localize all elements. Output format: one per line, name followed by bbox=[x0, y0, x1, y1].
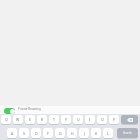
staticText: A bbox=[11, 131, 14, 136]
button[interactable]: J bbox=[79, 128, 89, 138]
button[interactable]: I bbox=[85, 115, 95, 124]
button[interactable]: O bbox=[97, 115, 107, 124]
staticText: I bbox=[89, 117, 91, 122]
staticText: P bbox=[113, 117, 116, 122]
button[interactable]: Y bbox=[61, 115, 71, 124]
button[interactable]: S bbox=[19, 128, 29, 138]
button[interactable]: L bbox=[103, 128, 113, 138]
staticText: K bbox=[95, 131, 98, 136]
button[interactable]: P bbox=[109, 115, 119, 124]
button[interactable]: H bbox=[67, 128, 77, 138]
button[interactable]: R bbox=[37, 115, 47, 124]
staticText: Q bbox=[5, 117, 8, 122]
button[interactable]: E bbox=[25, 115, 35, 124]
button[interactable]: G bbox=[55, 128, 65, 138]
button[interactable]: Search bbox=[117, 128, 138, 138]
button[interactable] bbox=[121, 115, 138, 124]
staticText: J bbox=[84, 131, 85, 136]
staticText: R bbox=[41, 117, 44, 122]
staticText: W bbox=[16, 117, 20, 122]
button[interactable]: W bbox=[13, 115, 23, 124]
button[interactable]: T bbox=[49, 115, 59, 124]
staticText: Search bbox=[123, 131, 132, 135]
staticText: D bbox=[35, 131, 38, 136]
staticText: E bbox=[29, 117, 31, 122]
button[interactable]: F bbox=[43, 128, 53, 138]
button[interactable]: U bbox=[73, 115, 83, 124]
staticText: G bbox=[59, 131, 62, 136]
staticText: L bbox=[107, 131, 109, 136]
button[interactable]: K bbox=[91, 128, 101, 138]
staticText: Private Browsing bbox=[18, 107, 41, 111]
staticText: H bbox=[71, 131, 74, 136]
staticText: Y bbox=[65, 117, 67, 122]
staticText: O bbox=[101, 117, 104, 122]
button[interactable]: Q bbox=[1, 115, 11, 124]
button[interactable]: D bbox=[31, 128, 41, 138]
button[interactable]: Private Browsing bbox=[18, 106, 42, 111]
staticText: U bbox=[77, 117, 80, 122]
button[interactable]: A bbox=[7, 128, 17, 138]
staticText: S bbox=[23, 131, 25, 136]
staticText: T bbox=[53, 117, 55, 122]
staticText: F bbox=[47, 131, 49, 136]
button[interactable] bbox=[4, 108, 15, 114]
